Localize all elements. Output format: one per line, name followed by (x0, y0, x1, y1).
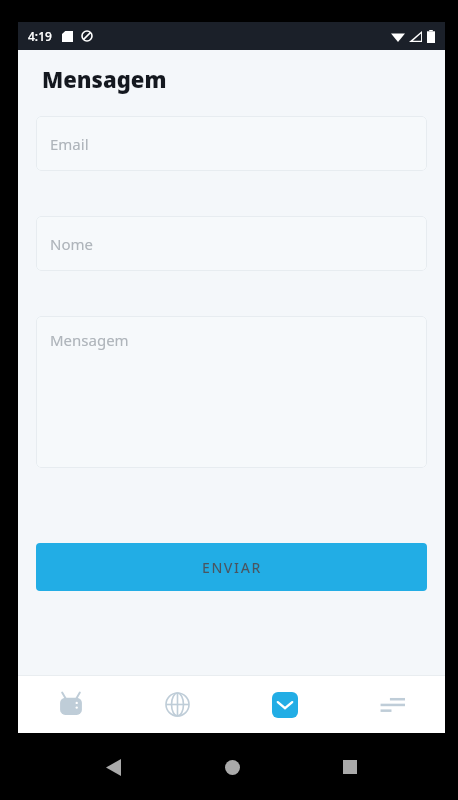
button[interactable]: Messages (231, 676, 338, 733)
button[interactable]: TV (18, 676, 124, 733)
button[interactable]: Web (124, 676, 231, 733)
button[interactable]: Mensagem (36, 316, 427, 468)
button[interactable]: ENVIAR (36, 543, 427, 591)
staticText: Mensagem (50, 330, 129, 350)
button[interactable]: Home (208, 743, 256, 791)
button[interactable]: More (338, 676, 445, 733)
staticText: Nome (50, 234, 93, 254)
button[interactable]: Recent apps (326, 743, 374, 791)
button[interactable]: Email (36, 116, 427, 171)
staticText: Email (50, 134, 89, 154)
staticText: 4:19 (28, 28, 52, 44)
staticText: Mensagem (42, 64, 167, 94)
staticText: ENVIAR (202, 558, 262, 577)
button[interactable]: Back (89, 743, 137, 791)
button[interactable]: Nome (36, 216, 427, 271)
